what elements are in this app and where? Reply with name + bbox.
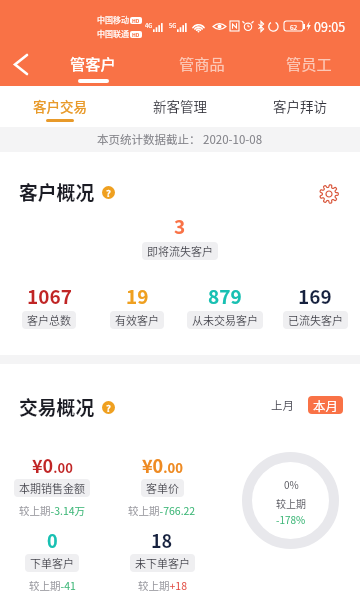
staticText: 本期销售金额	[19, 480, 85, 496]
staticText: HD	[132, 31, 140, 38]
button[interactable]: 879	[180, 282, 270, 329]
staticText: ?	[106, 401, 111, 414]
button[interactable]: 本月	[308, 396, 343, 414]
staticText: 有效客户	[115, 312, 159, 328]
button[interactable]: ¥0.00	[0, 452, 107, 518]
staticText: 18	[151, 527, 173, 553]
button[interactable]: 管员工	[256, 30, 360, 86]
staticText: 0%	[284, 477, 299, 491]
button[interactable]: 0	[0, 527, 107, 593]
button[interactable]: ¥0.00	[107, 452, 217, 518]
staticText: 较上期	[276, 496, 306, 510]
button[interactable]: Back	[1, 44, 41, 84]
staticText: 客单价	[146, 480, 179, 496]
staticText: 已流失客户	[288, 312, 343, 328]
staticText: ¥0.00	[32, 452, 73, 478]
button[interactable]: 上月	[266, 396, 299, 414]
staticText: 879	[208, 282, 242, 310]
staticText: 4G	[145, 21, 153, 30]
button[interactable]: 19	[92, 282, 182, 329]
staticText: 较上期-766.22	[128, 503, 196, 518]
button[interactable]: 客户交易	[0, 86, 120, 127]
staticText: ¥0.00	[142, 452, 183, 478]
button[interactable]: 管商品	[149, 30, 255, 86]
staticText: 从未交易客户	[192, 312, 258, 328]
staticText: 62	[290, 22, 298, 31]
staticText: 5G	[169, 21, 177, 30]
staticText: 交易概况	[19, 393, 95, 420]
staticText: ?	[106, 186, 111, 199]
staticText: 0	[47, 527, 58, 553]
staticText: 客户总数	[27, 312, 71, 328]
staticText: -178%	[276, 512, 306, 526]
staticText: 管商品	[179, 52, 225, 74]
button[interactable]: Settings	[317, 182, 341, 206]
staticText: 1067	[27, 282, 72, 310]
staticText: 即将流失客户	[147, 243, 213, 259]
staticText: 客户概况	[19, 178, 95, 205]
staticText: 客户交易	[33, 96, 87, 116]
button[interactable]: 18	[107, 527, 217, 593]
button[interactable]: 169	[270, 282, 360, 329]
staticText: 未下单客户	[135, 555, 190, 571]
staticText: 新客管理	[153, 96, 207, 116]
staticText: 管客户	[70, 52, 116, 74]
button[interactable]: 管客户	[40, 30, 146, 86]
staticText: 中国联通	[97, 28, 129, 40]
staticText: 本页统计数据截止： 2020-10-08	[97, 131, 263, 148]
button[interactable]: 1067	[4, 282, 94, 329]
button[interactable]: 客户拜访	[240, 86, 360, 127]
staticText: 中国移动	[97, 14, 129, 26]
staticText: 客户拜访	[273, 96, 327, 116]
staticText: 较上期+18	[138, 578, 187, 593]
staticText: 169	[298, 282, 332, 310]
staticText: 3	[174, 212, 186, 240]
staticText: HD	[132, 17, 140, 24]
staticText: 本月	[313, 396, 339, 414]
staticText: 较上期-41	[29, 578, 76, 593]
staticText: 09:05	[314, 17, 346, 35]
staticText: 下单客户	[30, 555, 74, 571]
staticText: 上月	[271, 397, 294, 414]
button[interactable]: 新客管理	[120, 86, 240, 127]
staticText: 较上期-3.14万	[19, 503, 86, 518]
staticText: 19	[126, 282, 149, 310]
staticText: 管员工	[286, 52, 332, 74]
